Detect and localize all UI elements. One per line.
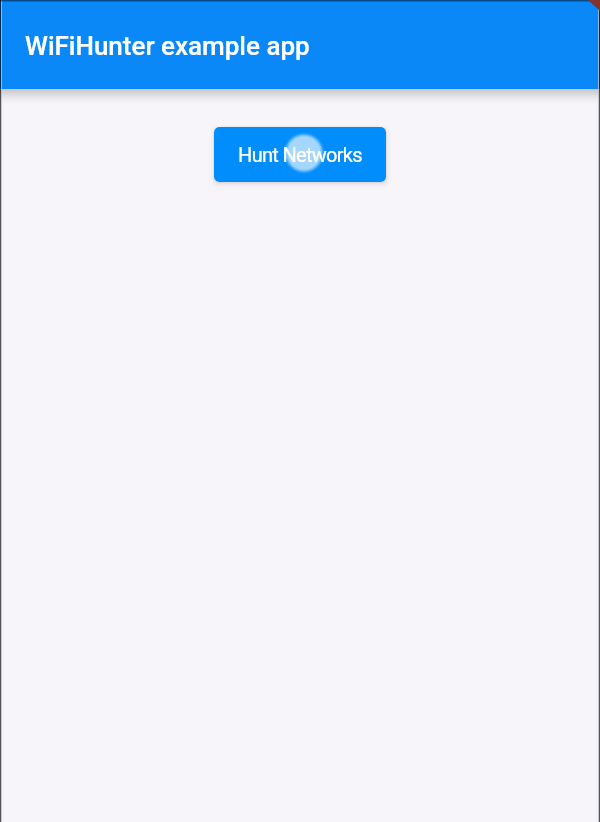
button[interactable]: Hunt Networks [214,127,386,182]
staticText: WiFiHunter example app [25,31,310,61]
staticText: Hunt Networks [238,143,362,166]
